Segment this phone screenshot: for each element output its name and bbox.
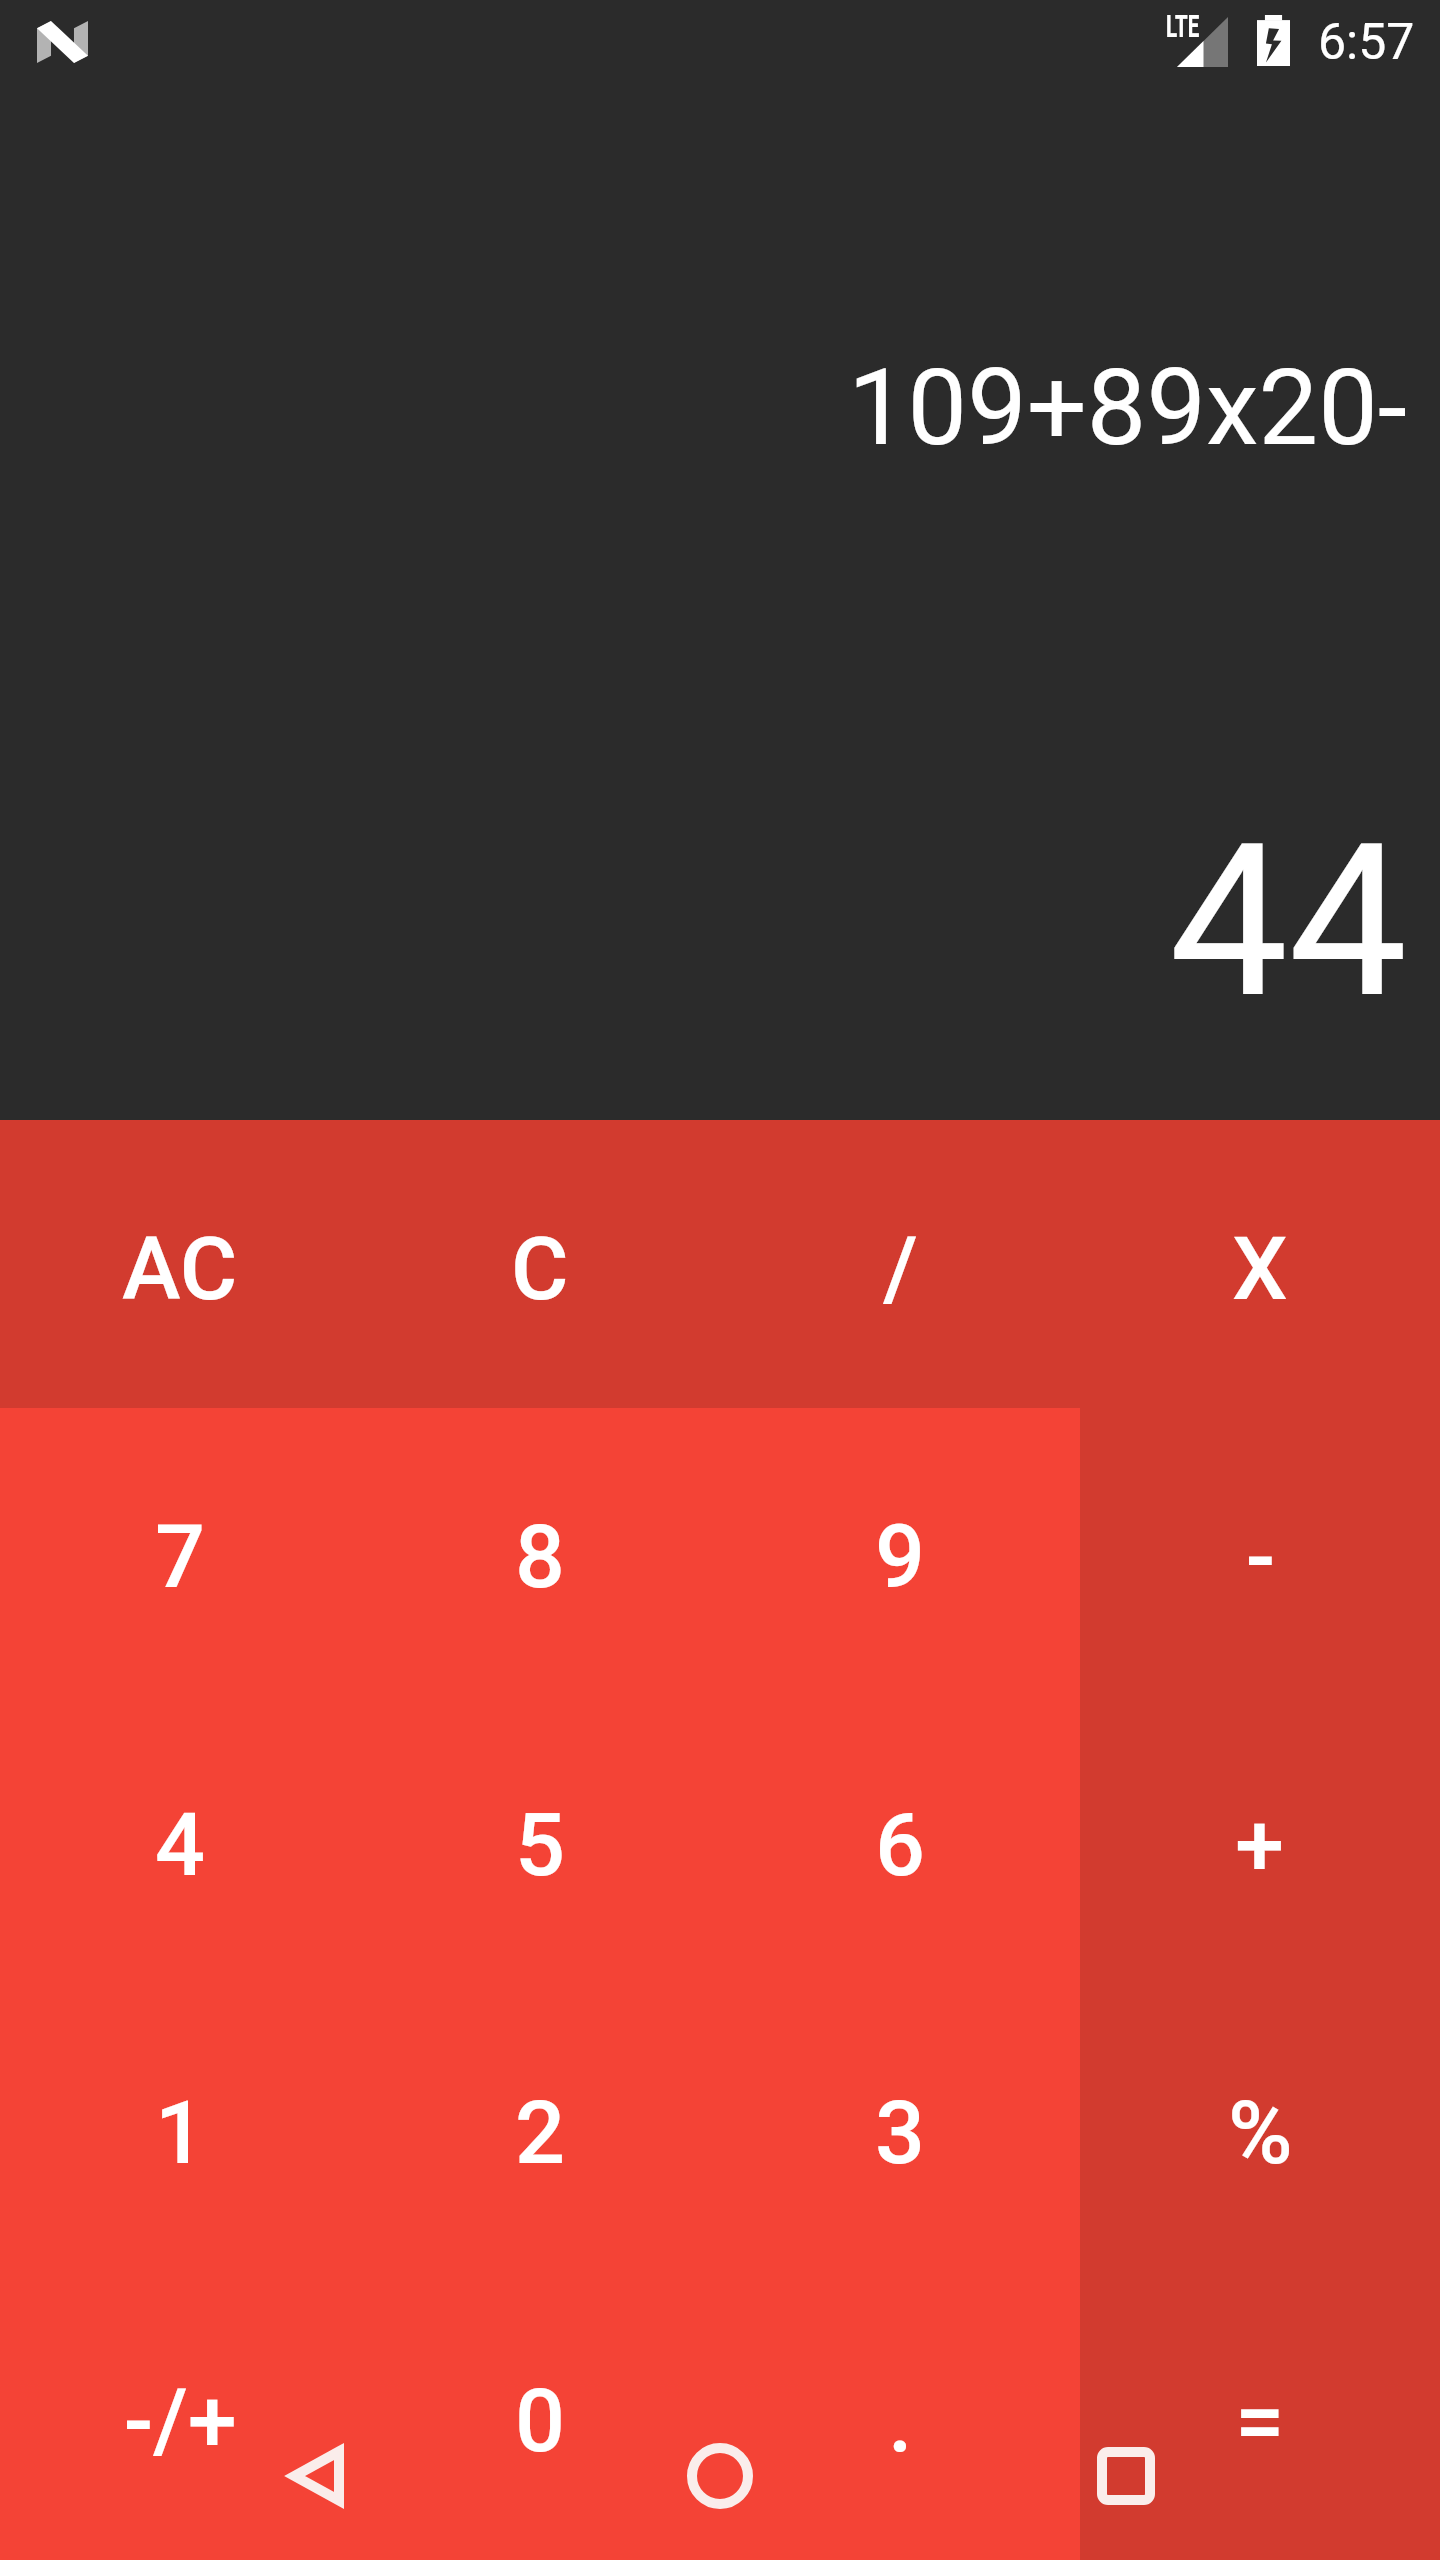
button[interactable]: X: [1080, 1120, 1440, 1408]
button[interactable]: 6: [720, 1696, 1080, 1984]
button[interactable]: AC: [0, 1120, 360, 1408]
button[interactable]: %: [1080, 1984, 1440, 2272]
staticText: %: [1228, 2081, 1293, 2184]
staticText: 4: [155, 1793, 206, 1896]
staticText: -: [1246, 1505, 1275, 1608]
staticText: AC: [122, 1217, 238, 1320]
button[interactable]: .: [720, 2272, 1080, 2560]
button[interactable]: +: [1080, 1696, 1440, 1984]
staticText: +: [1235, 1793, 1285, 1896]
staticText: =: [1235, 2369, 1285, 2472]
button[interactable]: -: [1080, 1408, 1440, 1696]
staticText: C: [511, 1217, 569, 1320]
button[interactable]: 5: [360, 1696, 720, 1984]
button[interactable]: Home: [648, 2404, 792, 2548]
button[interactable]: 2: [360, 1984, 720, 2272]
staticText: LTE: [1166, 7, 1199, 45]
button[interactable]: 0: [360, 2272, 720, 2560]
staticText: 44: [1169, 797, 1408, 1045]
button[interactable]: 9: [720, 1408, 1080, 1696]
staticText: 5: [515, 1793, 566, 1896]
staticText: 1: [155, 2081, 206, 2184]
button[interactable]: /: [720, 1120, 1080, 1408]
staticText: 9: [875, 1505, 926, 1608]
button[interactable]: 8: [360, 1408, 720, 1696]
button[interactable]: 1: [0, 1984, 360, 2272]
staticText: X: [1232, 1217, 1288, 1320]
staticText: 3: [875, 2081, 926, 2184]
staticText: 109+89x20-: [848, 346, 1408, 470]
button[interactable]: Recent apps: [1054, 2404, 1198, 2548]
staticText: 0: [515, 2369, 566, 2472]
button[interactable]: 3: [720, 1984, 1080, 2272]
staticText: 6: [875, 1793, 926, 1896]
staticText: 8: [515, 1505, 566, 1608]
staticText: 2: [515, 2081, 566, 2184]
button[interactable]: Back: [244, 2404, 388, 2548]
staticText: /: [883, 1217, 918, 1320]
button[interactable]: -/+: [0, 2272, 360, 2560]
button[interactable]: =: [1080, 2272, 1440, 2560]
button[interactable]: C: [360, 1120, 720, 1408]
button[interactable]: 7: [0, 1408, 360, 1696]
button[interactable]: 4: [0, 1696, 360, 1984]
staticText: 6:57: [1318, 13, 1415, 72]
staticText: 7: [155, 1505, 206, 1608]
staticText: .: [888, 2369, 913, 2472]
staticText: -/+: [124, 2369, 237, 2472]
